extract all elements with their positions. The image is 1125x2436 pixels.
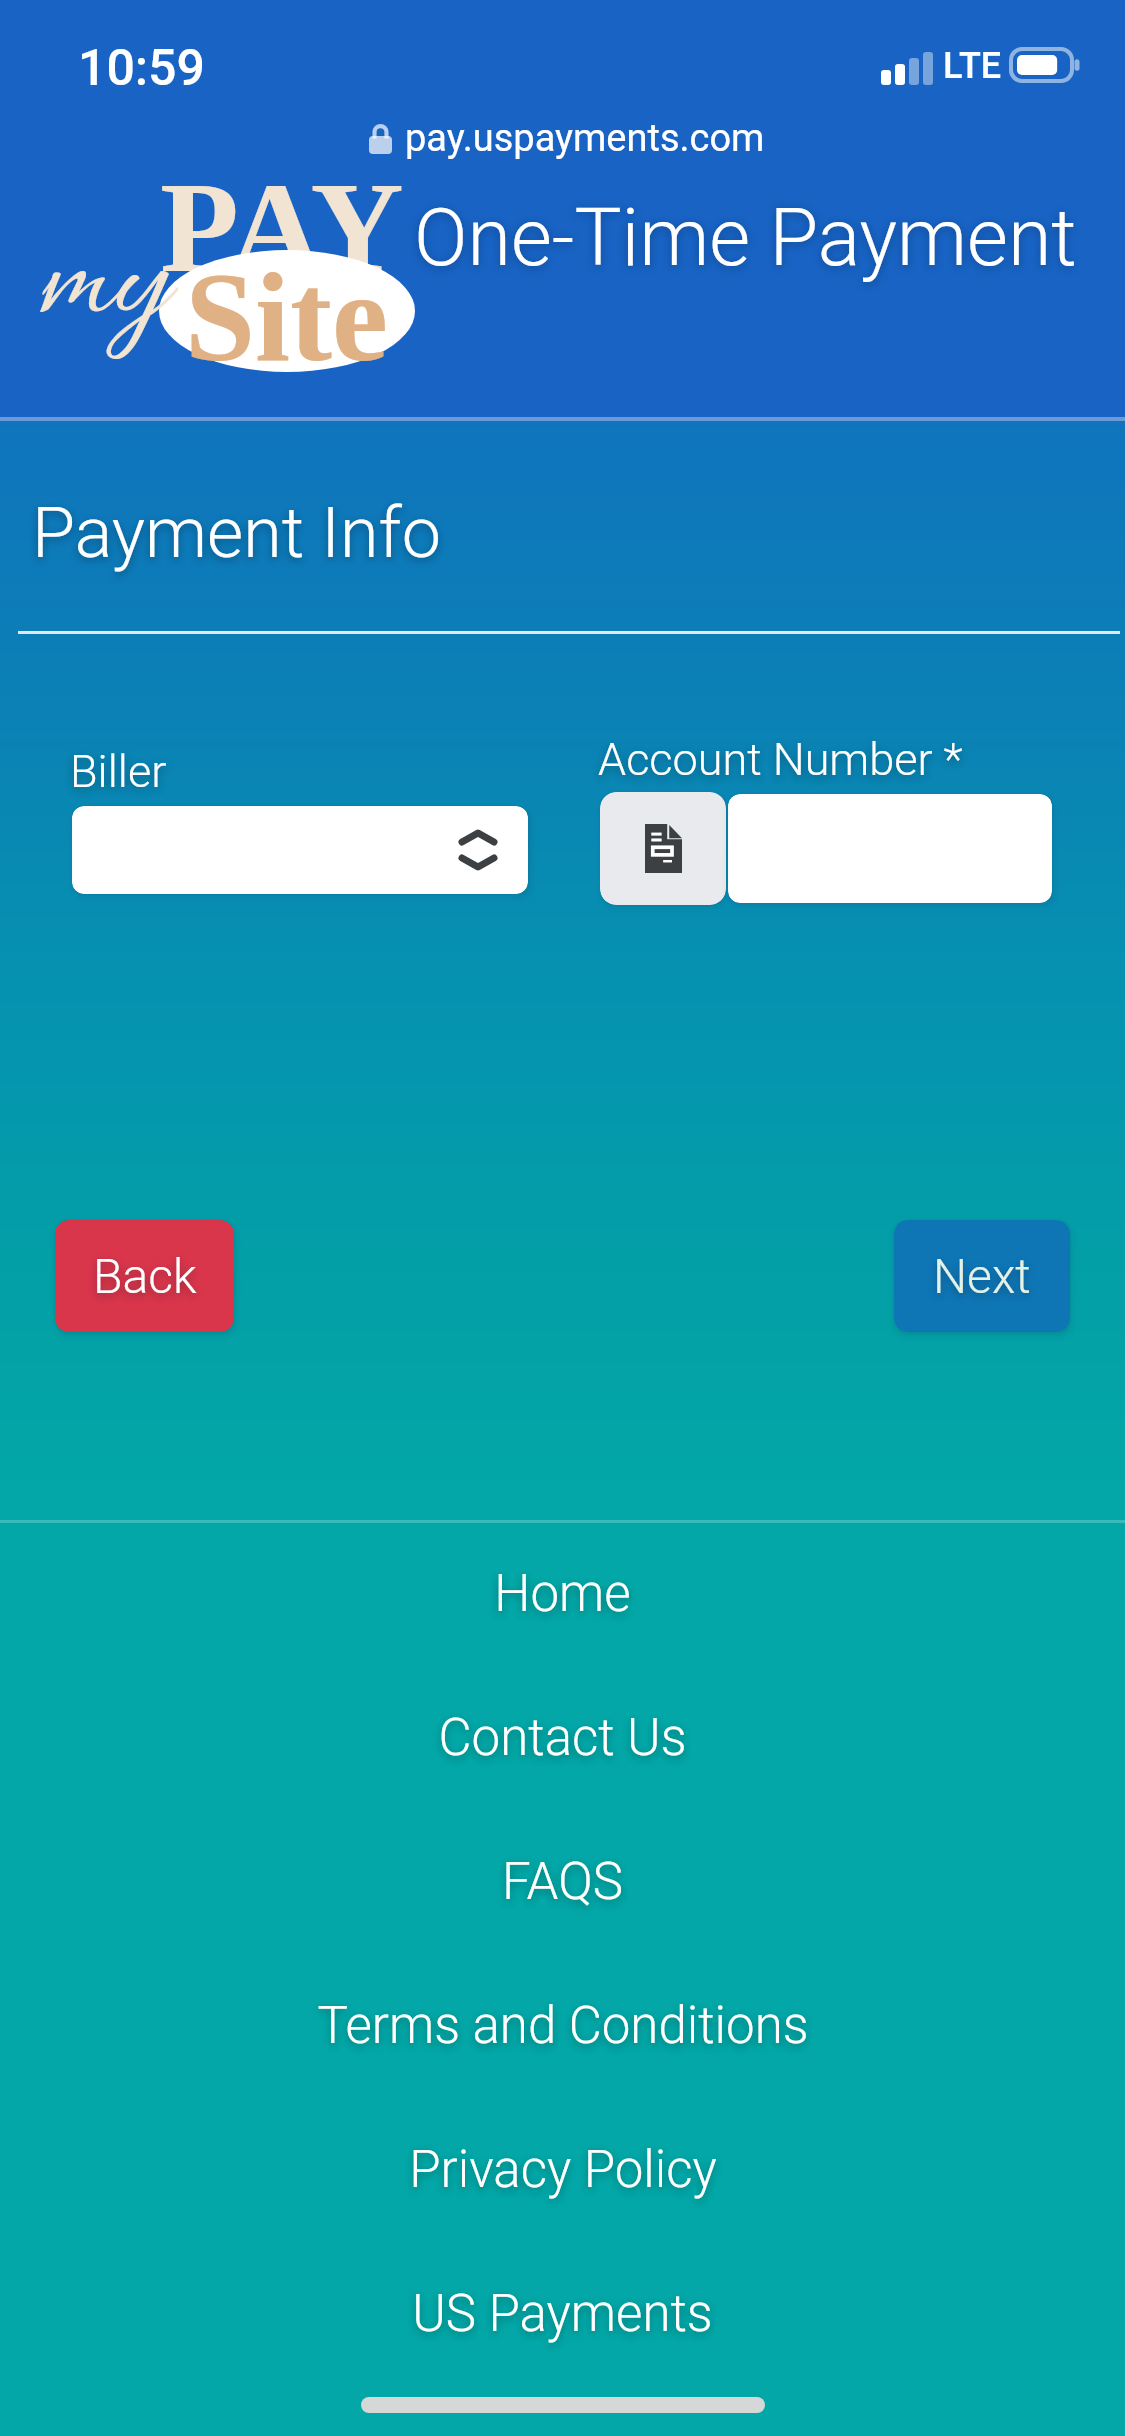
staticText: Privacy Policy bbox=[409, 2140, 717, 2200]
staticText: FAQS bbox=[502, 1852, 623, 1912]
staticText: Back bbox=[93, 1248, 197, 1304]
button[interactable]: Contact Us bbox=[0, 1666, 1125, 1810]
button[interactable]: US Payments bbox=[0, 2242, 1125, 2386]
staticText: LTE bbox=[943, 45, 1002, 87]
staticText: Site bbox=[185, 248, 388, 388]
staticText: One-Time Payment bbox=[414, 192, 1077, 285]
button[interactable]: Next bbox=[894, 1220, 1070, 1332]
button[interactable]: Site address pay.uspayments.com bbox=[340, 108, 785, 170]
staticText: Terms and Conditions bbox=[317, 1996, 809, 2056]
staticText: Biller bbox=[70, 745, 167, 798]
staticText: Account Number * bbox=[598, 733, 963, 786]
staticText: PAY bbox=[160, 156, 404, 299]
button[interactable]: Home bbox=[0, 1522, 1125, 1666]
staticText: pay.uspayments.com bbox=[405, 116, 765, 161]
button[interactable]: Biller bbox=[72, 806, 528, 894]
button[interactable]: Terms and Conditions bbox=[0, 1954, 1125, 2098]
staticText: Next bbox=[933, 1248, 1031, 1304]
staticText: Contact Us bbox=[438, 1708, 687, 1768]
staticText: US Payments bbox=[412, 2284, 713, 2344]
button[interactable]: Where do I find my account number? bbox=[600, 792, 726, 905]
button[interactable]: Back bbox=[55, 1220, 234, 1332]
button[interactable]: FAQS bbox=[0, 1810, 1125, 1954]
staticText: Payment Info bbox=[32, 492, 441, 574]
staticText: 10:59 bbox=[78, 39, 205, 98]
staticText: Home bbox=[494, 1564, 631, 1624]
staticText: my bbox=[38, 205, 169, 369]
button[interactable]: Account number bbox=[728, 794, 1052, 903]
button[interactable]: Privacy Policy bbox=[0, 2098, 1125, 2242]
